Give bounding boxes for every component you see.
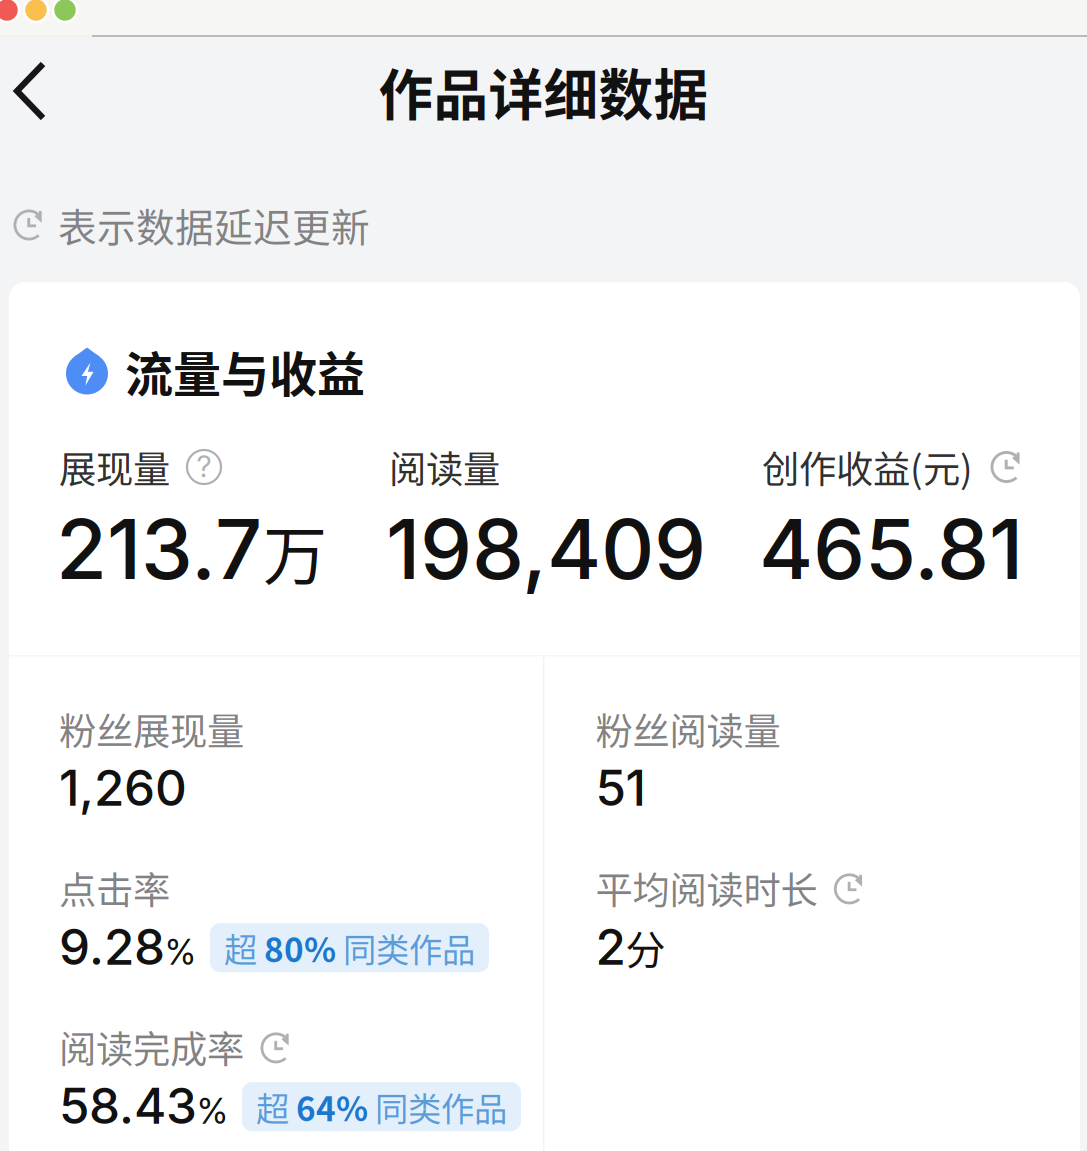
staticText: 9.28 bbox=[59, 917, 165, 977]
staticText: 1,260 bbox=[59, 758, 187, 818]
staticText: % bbox=[197, 1090, 228, 1132]
staticText: 213.7 bbox=[56, 499, 262, 599]
staticText: 超 bbox=[224, 923, 264, 972]
staticText: 阅读量 bbox=[389, 440, 500, 494]
staticText: 分 bbox=[625, 918, 665, 976]
staticText: 超 bbox=[256, 1082, 296, 1131]
staticText: 粉丝展现量 bbox=[59, 702, 244, 756]
button[interactable]: Back bbox=[0, 46, 94, 136]
staticText: 作品详细数据 bbox=[378, 51, 708, 131]
staticText: 2 bbox=[595, 917, 625, 977]
staticText: 平均阅读时长 bbox=[595, 861, 817, 915]
staticText: 80% bbox=[264, 923, 336, 972]
staticText: 64% bbox=[296, 1082, 368, 1131]
staticText: 点击率 bbox=[59, 861, 170, 915]
staticText: % bbox=[165, 931, 196, 973]
staticText: 粉丝阅读量 bbox=[595, 702, 780, 756]
staticText: 展现量 bbox=[59, 440, 170, 494]
staticText: 同类作品 bbox=[336, 923, 475, 972]
staticText: 198,409 bbox=[386, 499, 706, 599]
staticText: 465.81 bbox=[759, 499, 1023, 599]
staticText: 表示数据延迟更新 bbox=[58, 197, 370, 253]
staticText: 万 bbox=[263, 505, 327, 597]
staticText: 流量与收益 bbox=[125, 336, 365, 406]
staticText: 58.43 bbox=[59, 1076, 197, 1136]
staticText: ? bbox=[196, 449, 211, 484]
staticText: 51 bbox=[595, 758, 645, 818]
staticText: 阅读完成率 bbox=[59, 1020, 244, 1074]
staticText: 同类作品 bbox=[368, 1082, 507, 1131]
staticText: 创作收益(元) bbox=[762, 440, 973, 494]
